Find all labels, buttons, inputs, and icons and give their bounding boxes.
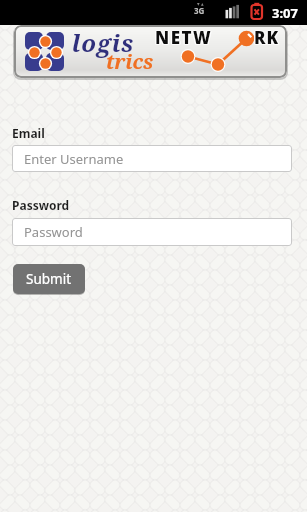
staticText: RK — [255, 27, 281, 50]
staticText: RK — [254, 25, 280, 48]
staticText: NETW — [154, 26, 212, 49]
staticText: RK — [253, 26, 279, 49]
staticText: NETW — [156, 26, 214, 49]
button[interactable]: Enter Username — [12, 145, 292, 172]
staticText: 3:07 — [272, 4, 298, 22]
staticText: NETW — [154, 27, 212, 50]
staticText: RK — [255, 26, 281, 49]
staticText: Submit — [26, 270, 72, 288]
staticText: Password — [24, 223, 83, 241]
staticText: RK — [253, 26, 279, 49]
staticText: RK — [254, 27, 280, 50]
staticText: Email — [12, 125, 45, 141]
staticText: NETW — [156, 27, 214, 50]
staticText: NETW — [154, 26, 212, 49]
staticText: NETW — [155, 25, 213, 48]
staticText: RK — [254, 26, 280, 49]
button[interactable]: Submit — [13, 264, 85, 294]
staticText: logis — [72, 26, 135, 59]
staticText: Password — [12, 197, 70, 213]
staticText: NETW — [155, 27, 213, 50]
staticText: RK — [253, 27, 279, 50]
staticText: RK — [255, 26, 281, 49]
button[interactable]: Password — [12, 218, 292, 246]
staticText: NETW — [156, 26, 214, 49]
staticText: Enter Username — [24, 150, 124, 168]
staticText: NETW — [155, 26, 213, 49]
staticText: trics — [106, 48, 154, 75]
staticText: 3G — [194, 5, 205, 16]
